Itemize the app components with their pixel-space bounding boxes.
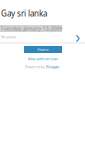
staticText: Home xyxy=(37,47,48,52)
staticText: Blogger. xyxy=(46,64,60,69)
button[interactable]: Older posts xyxy=(74,33,82,44)
staticText: No posts. xyxy=(1,34,17,39)
button[interactable]: View web version xyxy=(27,56,57,61)
staticText: Gay sri lanka xyxy=(1,8,47,19)
button[interactable]: Home xyxy=(24,46,62,53)
staticText: Powered by xyxy=(25,64,45,69)
button[interactable]: Blogger. xyxy=(46,64,60,69)
staticText: View web version xyxy=(27,56,57,61)
staticText: Tuesday, January 13, 2009 xyxy=(0,25,62,32)
